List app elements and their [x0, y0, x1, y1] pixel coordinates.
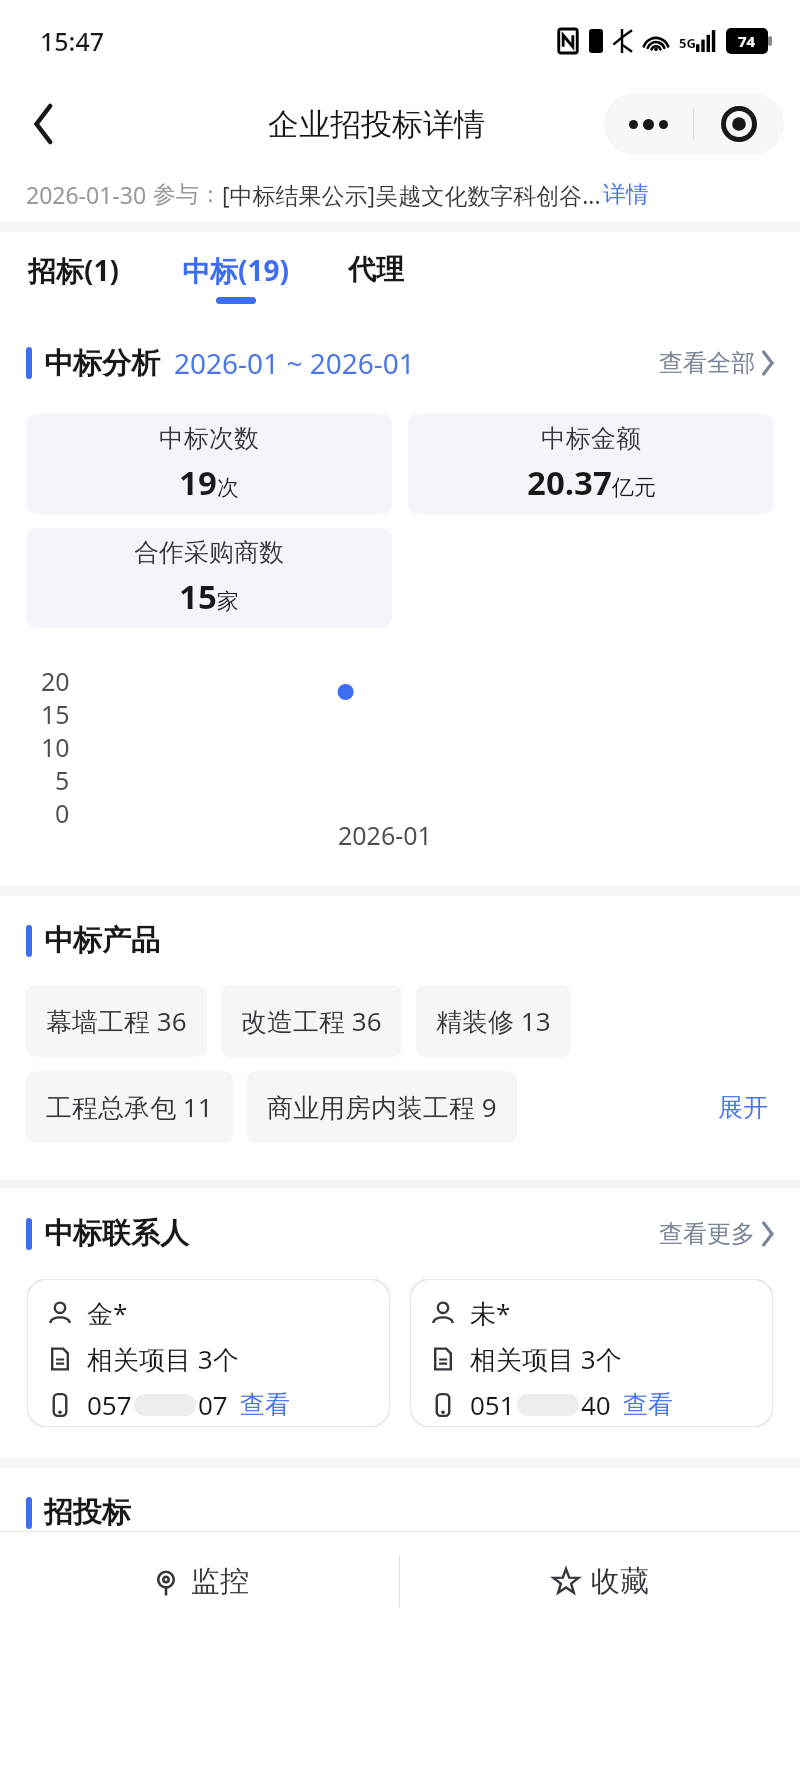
staticText: 中标分析 — [44, 345, 160, 382]
staticText: 改造工程 36 — [241, 1003, 382, 1039]
button[interactable]: Close — [694, 93, 784, 155]
staticText: 10 — [41, 730, 70, 763]
staticText: 2026-01 ~ 2026-01 — [174, 344, 415, 382]
staticText: 5G — [679, 34, 696, 52]
staticText: 中标金额 — [541, 423, 641, 454]
staticText: 40 — [581, 1387, 611, 1422]
button[interactable]: 展开 — [712, 1086, 774, 1129]
button[interactable]: 商业用房内装工程 9 — [247, 1071, 517, 1143]
staticText: 详情 — [603, 180, 649, 209]
staticText: 招投标 — [44, 1494, 131, 1531]
button[interactable]: 幕墙工程 36 — [26, 985, 207, 1057]
staticText: 工程总承包 11 — [46, 1089, 213, 1125]
staticText: 招标(1) — [28, 251, 120, 289]
button[interactable]: Back — [16, 96, 72, 152]
staticText: 查看 — [240, 1389, 290, 1420]
staticText: 代理 — [348, 252, 404, 287]
staticText: 相关项目 3个 — [470, 1341, 622, 1377]
staticText: 幕墙工程 36 — [46, 1003, 187, 1039]
staticText: 2026-01-30 — [26, 179, 153, 210]
staticText: 中标联系人 — [44, 1215, 189, 1252]
staticText: 查看 — [623, 1389, 673, 1420]
staticText: 15 — [41, 697, 70, 730]
button[interactable]: 未* — [409, 1278, 774, 1428]
staticText: 参与： — [153, 180, 222, 209]
staticText: 15:47 — [40, 24, 105, 58]
button[interactable]: 查看全部 — [659, 348, 774, 378]
staticText: 5 — [55, 763, 70, 796]
staticText: 亿元 — [612, 474, 656, 502]
staticText: 74 — [738, 31, 756, 51]
button[interactable]: 改造工程 36 — [221, 985, 402, 1057]
staticText: 金* — [87, 1295, 128, 1331]
staticText: 监控 — [191, 1563, 249, 1600]
staticText: 收藏 — [591, 1563, 649, 1600]
staticText: 中标产品 — [44, 922, 160, 959]
button[interactable]: 查看 — [623, 1389, 673, 1420]
staticText: 07 — [198, 1387, 228, 1422]
staticText: 次 — [217, 474, 239, 502]
button[interactable]: 合作采购商数 — [26, 528, 392, 628]
button[interactable]: 中标(19) — [178, 245, 294, 310]
staticText: 展开 — [718, 1092, 768, 1123]
staticText: 中标次数 — [159, 423, 259, 454]
button[interactable]: 精装修 13 — [416, 985, 571, 1057]
staticText: 查看全部 — [659, 348, 755, 378]
button[interactable]: 查看 — [240, 1389, 290, 1420]
button[interactable]: 中标次数 — [26, 414, 392, 514]
staticText: 20 — [41, 664, 70, 697]
staticText: 2026-01 — [338, 818, 432, 852]
staticText: 15 — [179, 574, 217, 619]
staticText: 相关项目 3个 — [87, 1341, 239, 1377]
button[interactable]: 监控 — [0, 1531, 399, 1631]
staticText: 未* — [470, 1295, 511, 1331]
staticText: 051 — [470, 1387, 515, 1422]
staticText: 20.37 — [527, 460, 612, 505]
staticText: [中标结果公示]吴越文化数字科创谷... — [222, 179, 601, 210]
staticText: 057 — [87, 1387, 132, 1422]
button[interactable]: 代理 — [344, 246, 408, 308]
button[interactable]: 工程总承包 11 — [26, 1071, 233, 1143]
button[interactable]: 金* — [26, 1278, 391, 1428]
staticText: 精装修 13 — [436, 1003, 551, 1039]
staticText: 中标(19) — [182, 251, 290, 289]
staticText: 家 — [217, 588, 239, 616]
staticText: 19 — [179, 460, 217, 505]
staticText: 合作采购商数 — [134, 537, 284, 568]
button[interactable]: 招标(1) — [24, 245, 124, 310]
button[interactable]: 查看更多 — [659, 1219, 774, 1249]
button[interactable]: 中标金额 — [408, 414, 774, 514]
staticText: 查看更多 — [659, 1219, 755, 1249]
button[interactable]: More options — [604, 93, 693, 155]
staticText: 商业用房内装工程 9 — [267, 1089, 497, 1125]
staticText: 0 — [55, 796, 70, 829]
staticText: 企业招投标详情 — [268, 105, 485, 144]
button[interactable]: 详情 — [603, 180, 649, 209]
button[interactable]: 收藏 — [400, 1531, 800, 1631]
